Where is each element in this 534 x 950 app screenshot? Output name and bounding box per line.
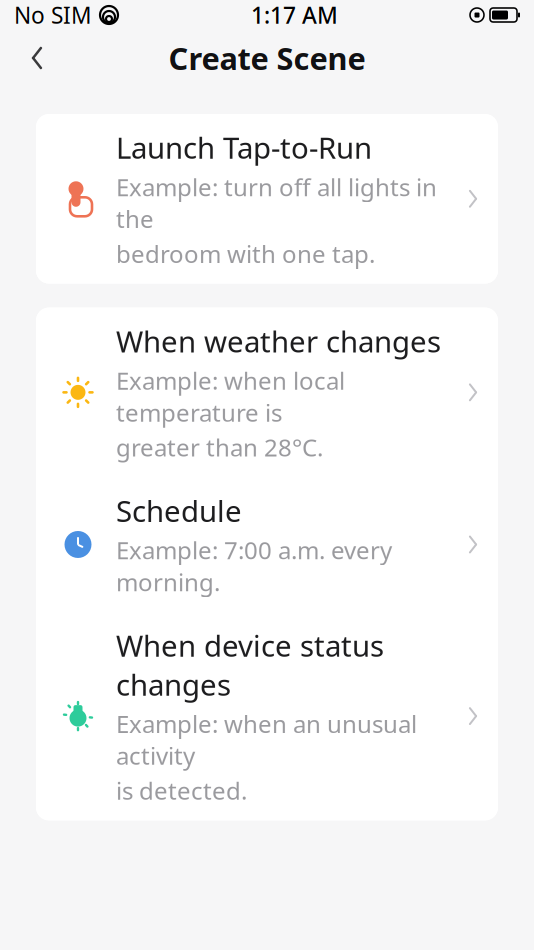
staticText: No SIM: [14, 0, 92, 30]
button[interactable]: Schedule: [36, 477, 498, 612]
staticText: When device status changes: [116, 626, 384, 704]
staticText: Schedule: [116, 491, 242, 530]
button[interactable]: Back: [12, 36, 62, 80]
staticText: When weather changes: [116, 322, 441, 361]
staticText: Example: when an unusual activity: [116, 708, 417, 771]
staticText: Example: turn off all lights in the: [116, 171, 437, 235]
staticText: is detected.: [116, 774, 247, 806]
staticText: bedroom with one tap.: [116, 238, 375, 270]
staticText: Launch Tap-to-Run: [116, 128, 372, 167]
staticText: 1:17 AM: [251, 0, 338, 30]
staticText: greater than 28°C.: [116, 431, 323, 463]
button[interactable]: Launch Tap-to-Run: [36, 114, 498, 284]
button[interactable]: When device status changes: [36, 612, 498, 820]
staticText: Example: 7:00 a.m. every morning.: [116, 534, 392, 598]
button[interactable]: When weather changes: [36, 308, 498, 477]
staticText: Example: when local temperature is: [116, 364, 345, 428]
staticText: Create Scene: [168, 38, 365, 78]
